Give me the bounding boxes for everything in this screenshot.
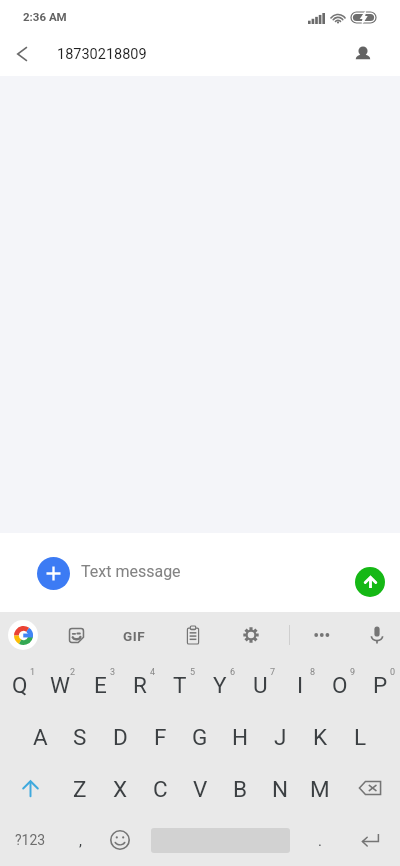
button[interactable]: K [300, 710, 340, 762]
button[interactable]: , [60, 814, 100, 866]
staticText: Q [12, 672, 28, 698]
button[interactable]: A [20, 710, 60, 762]
button[interactable]: B [220, 762, 260, 814]
button[interactable]: Z [60, 762, 100, 814]
staticText: B [233, 776, 248, 802]
staticText: 9 [350, 667, 356, 678]
staticText: P [373, 672, 388, 698]
staticText: 5 [190, 667, 196, 678]
staticText: A [33, 724, 48, 750]
staticText: Y [213, 672, 227, 698]
button[interactable]: Clipboard [173, 615, 213, 655]
staticText: C [153, 776, 168, 802]
staticText: 1 [30, 667, 36, 678]
button[interactable]: ?123 [0, 814, 60, 866]
button[interactable]: Settings [231, 615, 271, 655]
staticText: Text message [81, 562, 181, 581]
staticText: 6 [230, 667, 236, 678]
staticText: 8 [310, 667, 316, 678]
staticText: L [354, 724, 367, 750]
button[interactable]: W [40, 658, 80, 710]
button[interactable]: Contact details [341, 32, 385, 76]
button[interactable]: X [100, 762, 140, 814]
staticText: D [113, 724, 128, 750]
staticText: T [173, 672, 187, 698]
button[interactable]: P [360, 658, 400, 710]
button[interactable]: Enter [340, 814, 400, 866]
staticText: U [253, 672, 268, 698]
staticText: E [94, 672, 107, 698]
button[interactable]: H [220, 710, 260, 762]
button[interactable]: Voice input [357, 615, 397, 655]
button[interactable]: Stickers [56, 615, 96, 655]
button[interactable]: C [140, 762, 180, 814]
button[interactable]: V [180, 762, 220, 814]
button[interactable]: N [260, 762, 300, 814]
staticText: ?123 [15, 832, 46, 848]
staticText: 2 [70, 667, 76, 678]
staticText: I [297, 672, 304, 698]
button[interactable]: Back [0, 32, 44, 76]
staticText: N [272, 776, 289, 802]
button[interactable]: G [180, 710, 220, 762]
staticText: K [313, 724, 328, 750]
staticText: , [79, 832, 82, 850]
button[interactable]: R [120, 658, 160, 710]
staticText: 0 [390, 667, 396, 678]
button[interactable]: Q [0, 658, 40, 710]
staticText: GIF [123, 628, 146, 644]
button[interactable]: Shift [0, 762, 60, 814]
button[interactable]: Backspace [340, 762, 400, 814]
button[interactable]: Google search [8, 620, 38, 650]
staticText: F [154, 724, 167, 750]
button[interactable]: M [300, 762, 340, 814]
button[interactable]: S [60, 710, 100, 762]
button[interactable]: Add attachment [37, 557, 70, 590]
button[interactable]: L [340, 710, 380, 762]
button[interactable]: D [100, 710, 140, 762]
staticText: 4 [150, 667, 156, 678]
button[interactable]: I [280, 658, 320, 710]
staticText: X [113, 776, 128, 802]
button[interactable]: F [140, 710, 180, 762]
button[interactable]: More options [303, 615, 343, 655]
button[interactable]: J [260, 710, 300, 762]
button[interactable]: Space [140, 814, 300, 866]
button[interactable]: U [240, 658, 280, 710]
button[interactable]: Emoji [100, 814, 140, 866]
staticText: V [193, 776, 208, 802]
button[interactable]: Send [355, 567, 385, 597]
staticText: S [73, 724, 87, 750]
staticText: 2:36 AM [23, 10, 67, 23]
staticText: 3 [110, 667, 116, 678]
staticText: G [192, 724, 208, 750]
button[interactable]: GIF [114, 615, 155, 655]
staticText: . [318, 832, 322, 850]
staticText: R [133, 672, 147, 698]
staticText: J [274, 724, 287, 750]
button[interactable]: Y [200, 658, 240, 710]
staticText: M [310, 776, 330, 802]
button[interactable]: O [320, 658, 360, 710]
button[interactable]: . [300, 814, 340, 866]
staticText: 18730218809 [57, 46, 147, 63]
button[interactable]: E [80, 658, 120, 710]
staticText: W [50, 672, 70, 698]
staticText: Z [73, 776, 87, 802]
staticText: 7 [270, 667, 276, 678]
button[interactable]: T [160, 658, 200, 710]
staticText: H [232, 724, 249, 750]
staticText: O [332, 672, 348, 698]
